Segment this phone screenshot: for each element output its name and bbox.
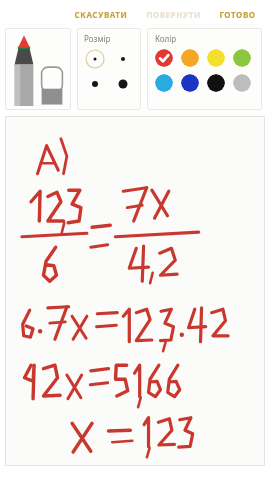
staticText: Колір xyxy=(155,33,177,44)
staticText: Розмір xyxy=(84,33,111,44)
button[interactable]: Brush size xyxy=(112,73,134,95)
button[interactable]: Marker pen xyxy=(11,34,37,106)
button[interactable]: ПОВЕРНУТИ xyxy=(144,5,203,24)
button[interactable]: Brush size xyxy=(84,48,106,70)
button[interactable]: Colour xyxy=(181,74,199,92)
button[interactable]: СКАСУВАТИ xyxy=(72,5,130,24)
staticText: СКАСУВАТИ xyxy=(74,9,128,20)
button[interactable]: Colour xyxy=(155,74,173,92)
button[interactable]: Brush size xyxy=(84,73,106,95)
button[interactable]: Colour xyxy=(207,74,225,92)
button[interactable]: Colour xyxy=(207,49,225,67)
button[interactable]: ГОТОВО xyxy=(217,5,258,24)
button[interactable]: Colour xyxy=(155,49,173,67)
button[interactable]: Brush size xyxy=(112,48,134,70)
button[interactable]: Eraser xyxy=(39,34,65,106)
button[interactable]: Colour xyxy=(181,49,199,67)
button[interactable]: Colour xyxy=(233,49,251,67)
button[interactable]: Colour xyxy=(233,74,251,92)
staticText: ГОТОВО xyxy=(219,9,256,20)
staticText: ПОВЕРНУТИ xyxy=(146,9,201,20)
